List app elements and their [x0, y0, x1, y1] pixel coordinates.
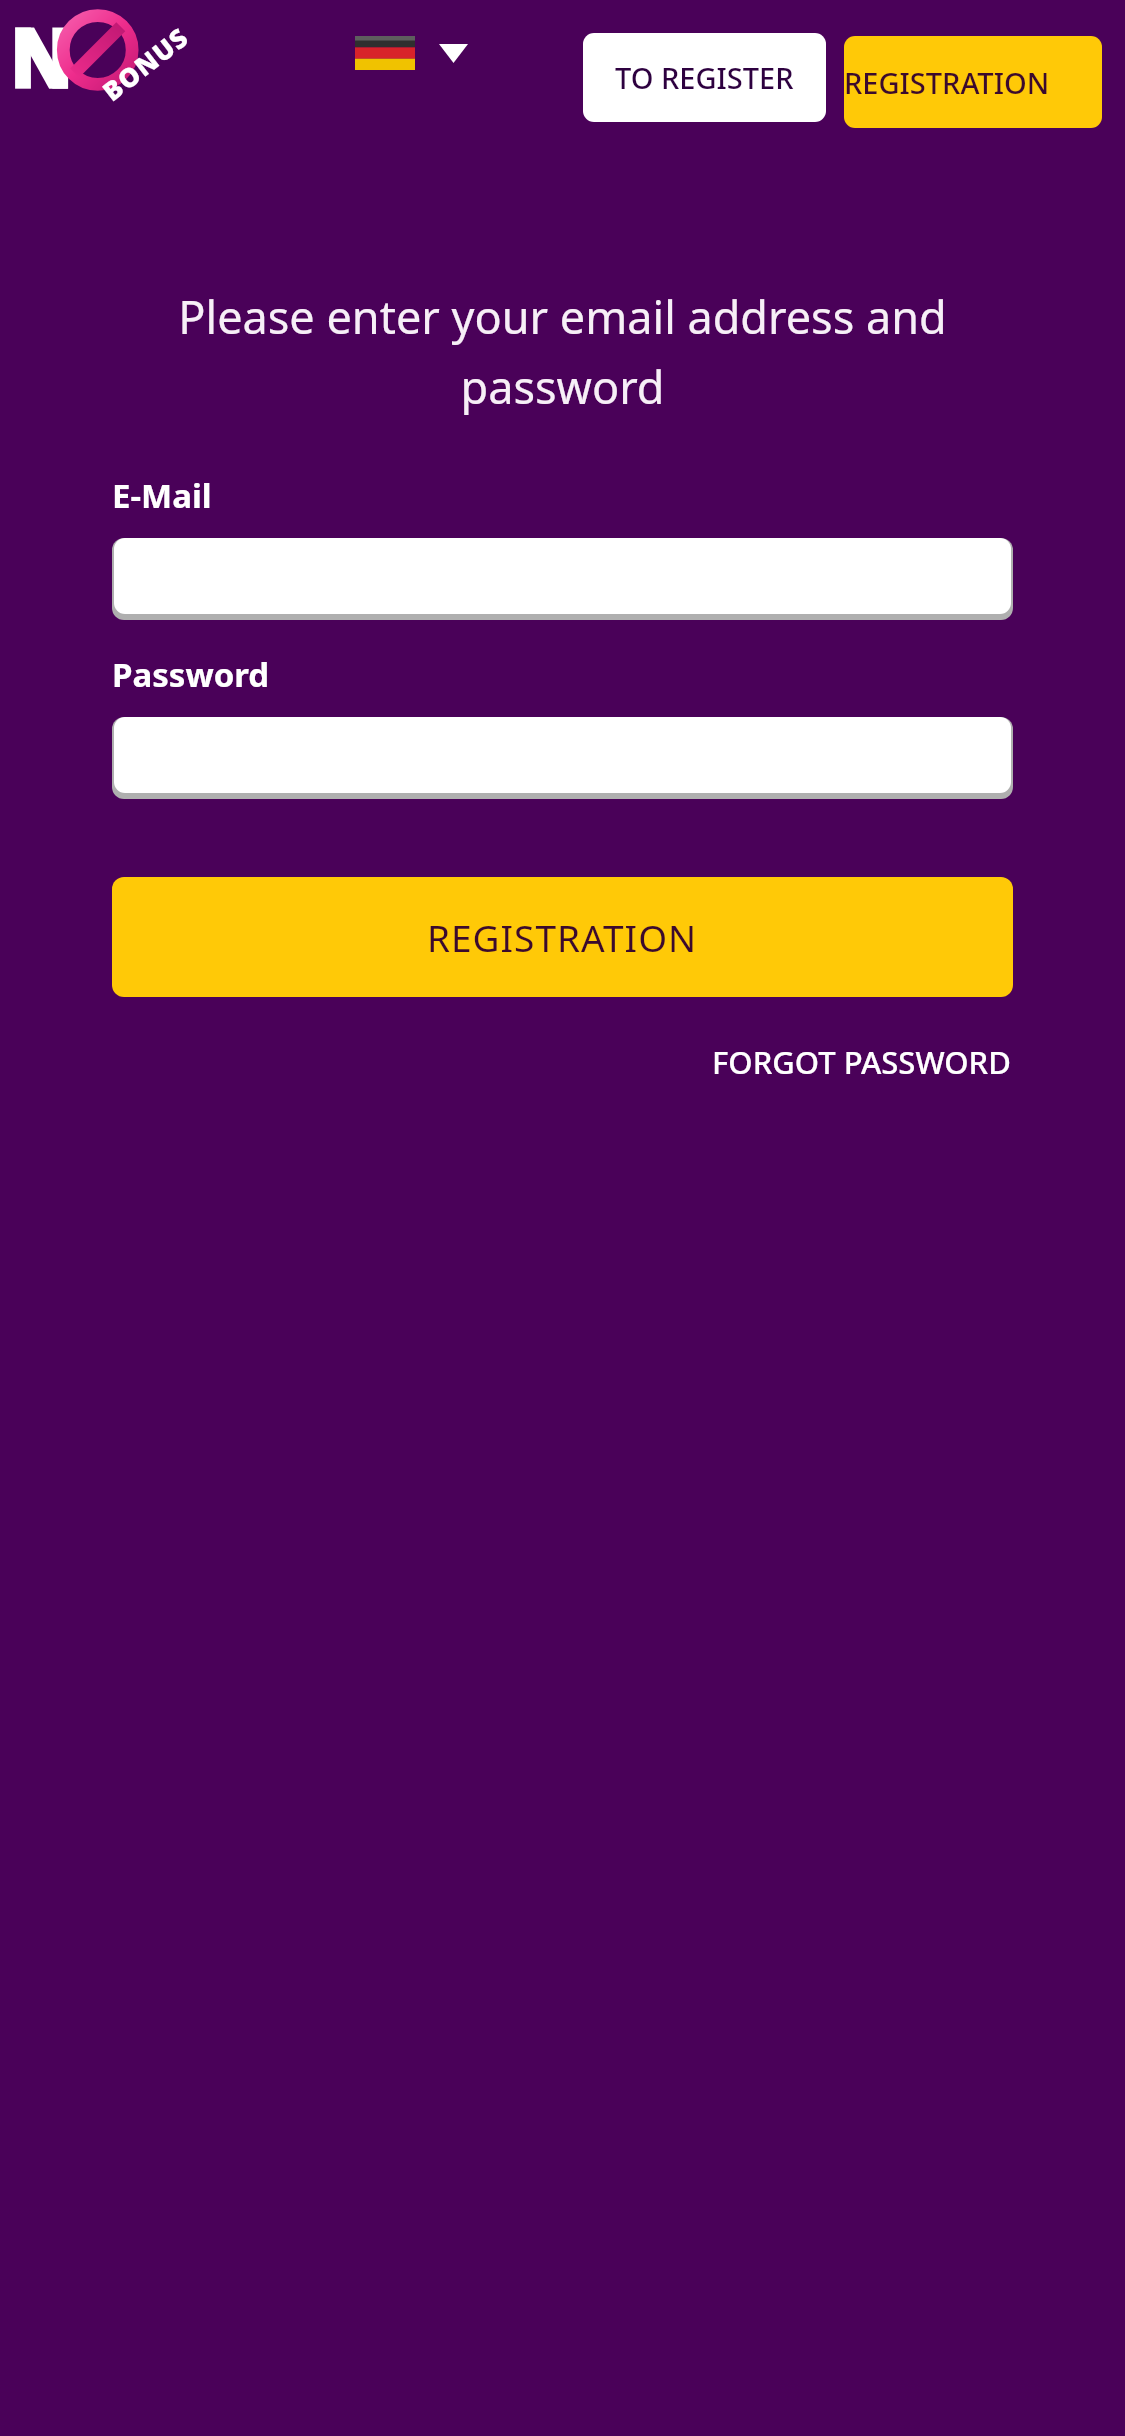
button[interactable]: REGISTRATION — [112, 877, 1013, 997]
staticText: REGISTRATION — [844, 63, 1050, 102]
staticText: FORGOT PASSWORD — [712, 1041, 1011, 1083]
button[interactable]: TO REGISTER — [583, 33, 826, 122]
staticText: REGISTRATION — [427, 912, 698, 962]
button[interactable]: Password input — [112, 717, 1013, 799]
button[interactable]: E-Mail input — [112, 538, 1013, 620]
staticText: E-Mail — [112, 473, 212, 518]
staticText: TO REGISTER — [615, 58, 794, 97]
button[interactable]: FORGOT PASSWORD — [710, 1031, 1013, 1093]
button[interactable]: NoBonus logo, home — [10, 2, 225, 104]
staticText: BONUS — [95, 19, 195, 108]
staticText: Password — [112, 652, 270, 697]
staticText: Please enter your email address and pass… — [112, 286, 1013, 417]
button[interactable]: Choose language, German selected — [344, 22, 468, 84]
button[interactable]: REGISTRATION — [844, 36, 1102, 128]
